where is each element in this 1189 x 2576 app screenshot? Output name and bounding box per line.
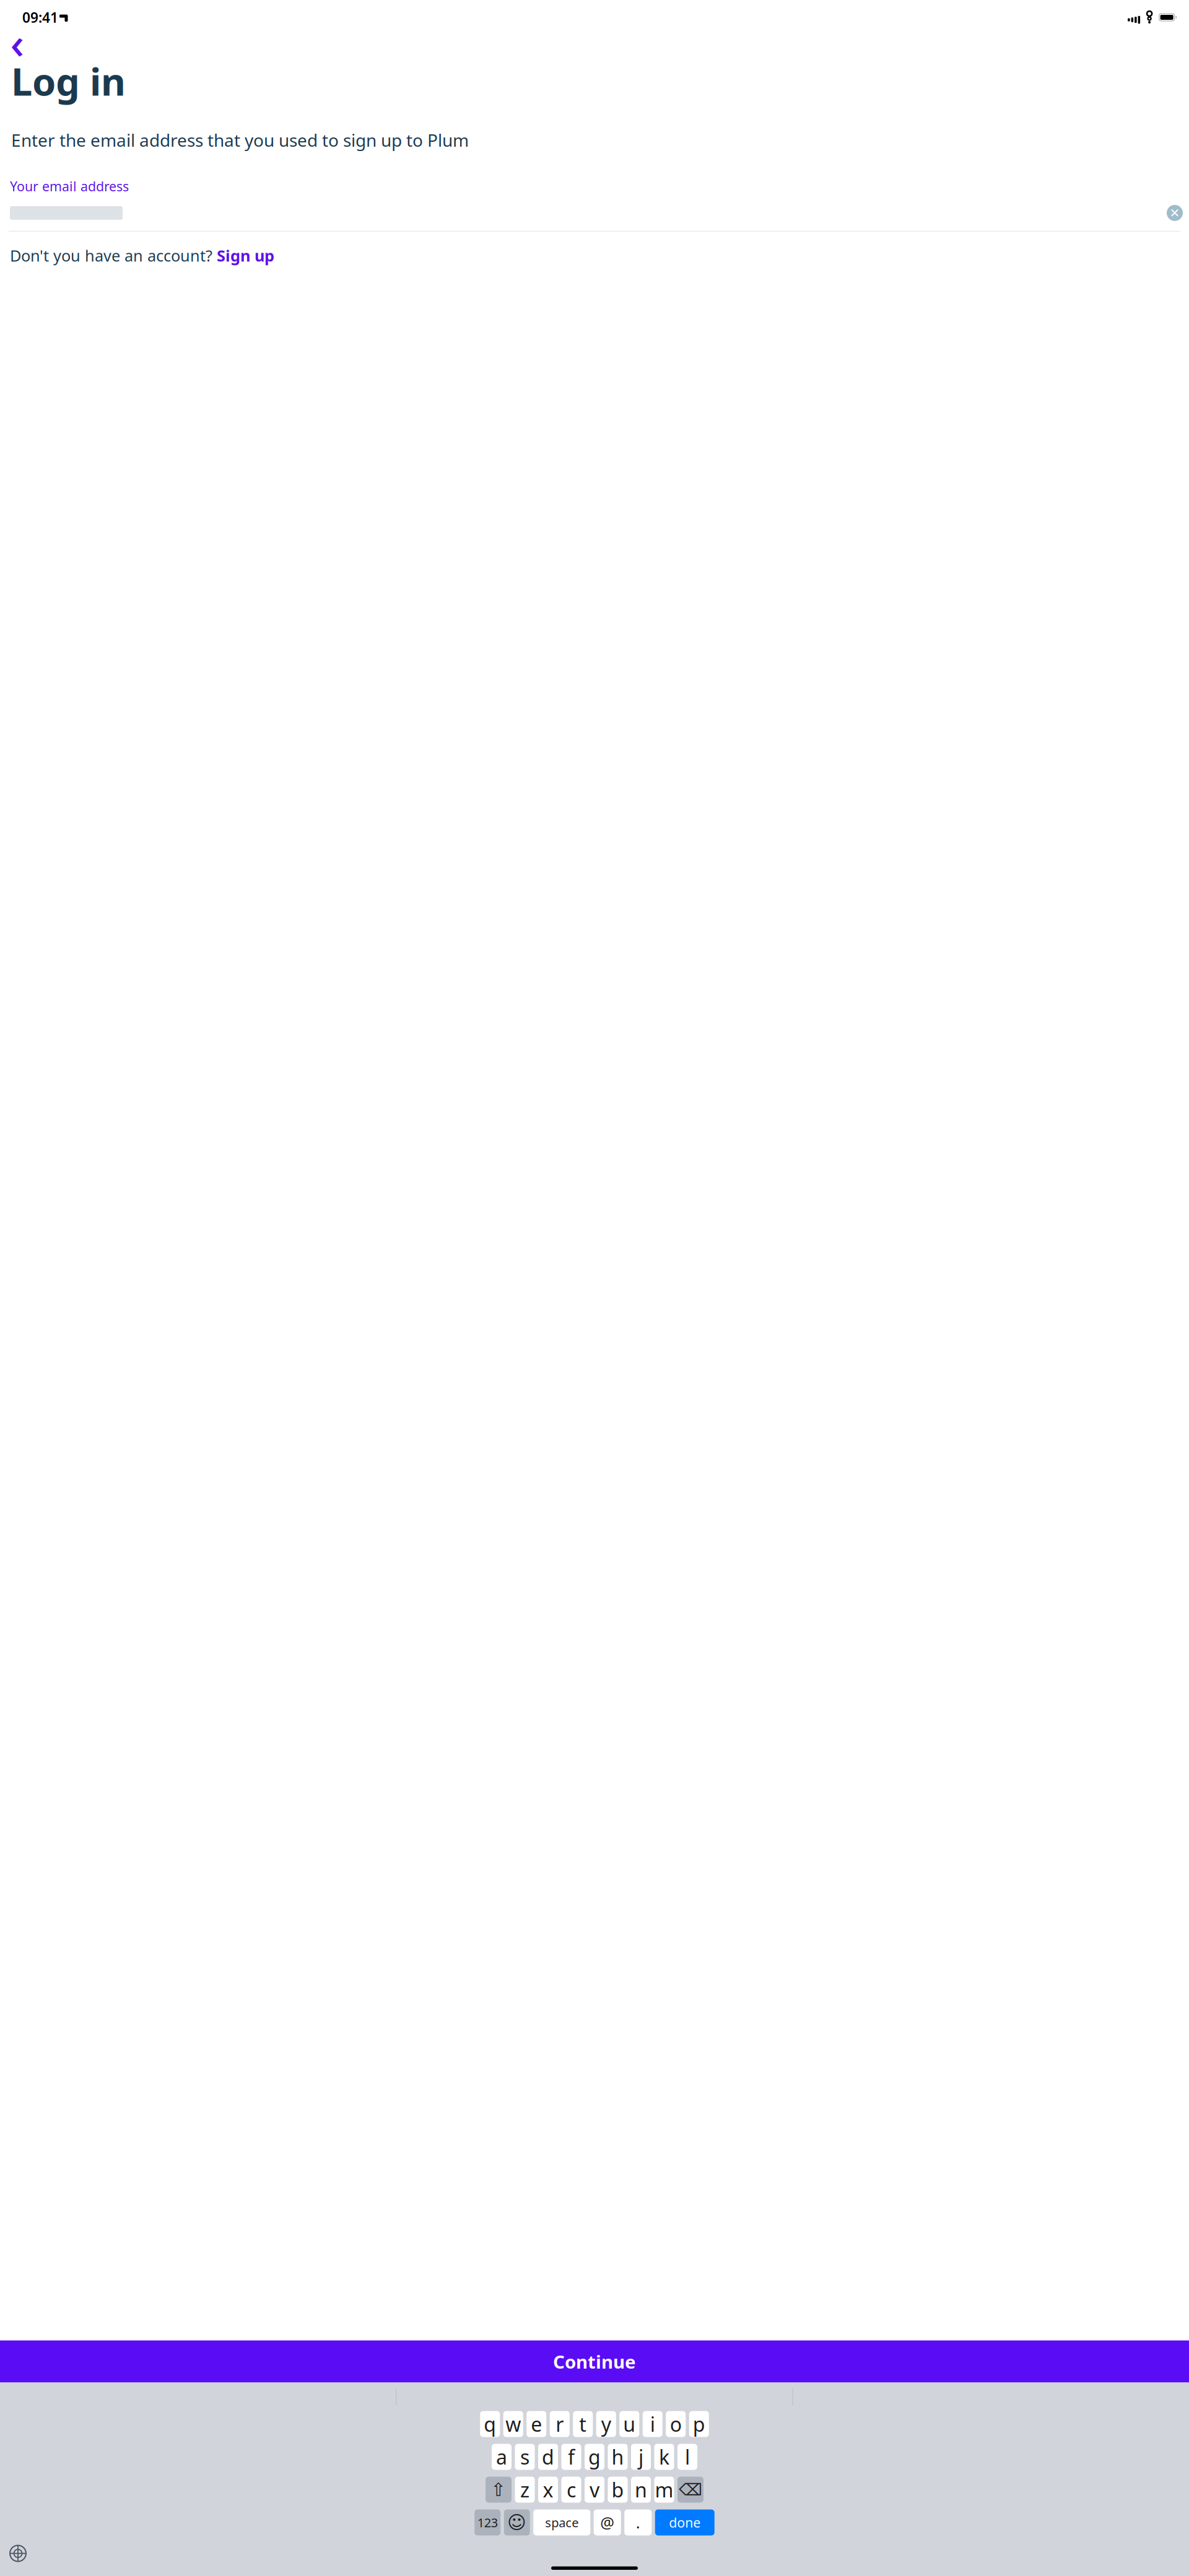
button[interactable]: Sign up (217, 245, 274, 266)
staticText: 123 (477, 2514, 498, 2531)
staticText: Enter the email address that you used to… (11, 128, 469, 151)
button[interactable]: w (503, 2411, 523, 2437)
button[interactable]: l (677, 2444, 697, 2470)
button[interactable]: @ (594, 2509, 621, 2535)
staticText: ‹ (10, 14, 24, 71)
staticText: q (484, 2411, 496, 2437)
staticText: 09:41 (22, 8, 58, 27)
staticText: k (659, 2444, 669, 2470)
button[interactable]: m (654, 2477, 674, 2503)
button[interactable]: q (480, 2411, 500, 2437)
staticText: h (612, 2444, 624, 2470)
button[interactable]: j (631, 2444, 651, 2470)
staticText: n (635, 2477, 647, 2503)
staticText: Your email address (10, 177, 129, 195)
button[interactable]: p (689, 2411, 709, 2437)
staticText: r (556, 2411, 564, 2437)
button[interactable]: b (608, 2477, 628, 2503)
button[interactable]: done (655, 2509, 715, 2535)
button[interactable]: Numbers (474, 2509, 500, 2535)
staticText: @ (600, 2512, 614, 2533)
staticText: m (655, 2477, 673, 2503)
button[interactable]: o (666, 2411, 686, 2437)
button[interactable]: v (585, 2477, 604, 2503)
button[interactable]: space (533, 2509, 590, 2535)
staticText: ⌫ (679, 2480, 702, 2499)
button[interactable]: n (631, 2477, 651, 2503)
staticText: s (520, 2444, 529, 2470)
button[interactable]: t (573, 2411, 593, 2437)
staticText: Don't you have an account? (10, 245, 217, 266)
staticText: b (612, 2477, 624, 2503)
button[interactable]: g (585, 2444, 604, 2470)
staticText: z (520, 2477, 529, 2503)
staticText: ☺ (507, 2512, 527, 2533)
button[interactable]: e (527, 2411, 546, 2437)
staticText: done (669, 2514, 701, 2531)
staticText: x (543, 2477, 553, 2503)
staticText: e (531, 2411, 542, 2437)
button[interactable]: . (624, 2509, 652, 2535)
staticText: i (650, 2411, 655, 2437)
button[interactable]: s (515, 2444, 535, 2470)
staticText: f (568, 2444, 575, 2470)
staticText: c (567, 2477, 576, 2503)
button[interactable]: Delete (677, 2477, 703, 2503)
staticText: Log in (11, 56, 126, 106)
button[interactable]: u (619, 2411, 639, 2437)
staticText: Sign up (217, 245, 274, 266)
staticText: space (545, 2514, 579, 2531)
button[interactable]: Switch keyboard (7, 2543, 28, 2564)
staticText: o (670, 2411, 682, 2437)
staticText: t (579, 2411, 587, 2437)
staticText: p (693, 2411, 705, 2437)
button[interactable]: a (492, 2444, 512, 2470)
staticText: d (542, 2444, 554, 2470)
staticText: u (623, 2411, 635, 2437)
staticText: l (685, 2444, 690, 2470)
staticText: j (638, 2444, 643, 2470)
staticText: w (505, 2411, 521, 2437)
button[interactable]: Clear text (1163, 201, 1187, 225)
button[interactable]: k (654, 2444, 674, 2470)
staticText: ✕ (1169, 206, 1180, 220)
staticText: g (588, 2444, 601, 2470)
button[interactable]: h (608, 2444, 628, 2470)
button[interactable]: d (538, 2444, 558, 2470)
staticText: . (636, 2512, 640, 2533)
button[interactable]: Back (4, 30, 31, 54)
button[interactable]: z (515, 2477, 535, 2503)
button[interactable]: f (561, 2444, 581, 2470)
button[interactable]: i (643, 2411, 662, 2437)
button[interactable]: Continue (0, 2340, 1189, 2383)
staticText: ⇧ (491, 2479, 506, 2500)
staticText: a (496, 2444, 507, 2470)
button[interactable]: Emoji (504, 2509, 530, 2535)
button[interactable]: r (550, 2411, 570, 2437)
staticText: v (590, 2477, 599, 2503)
button[interactable]: y (596, 2411, 616, 2437)
button[interactable]: x (538, 2477, 558, 2503)
button[interactable]: Shift (486, 2477, 512, 2503)
staticText: y (601, 2411, 611, 2437)
staticText: Continue (553, 2349, 636, 2374)
button[interactable]: c (561, 2477, 581, 2503)
